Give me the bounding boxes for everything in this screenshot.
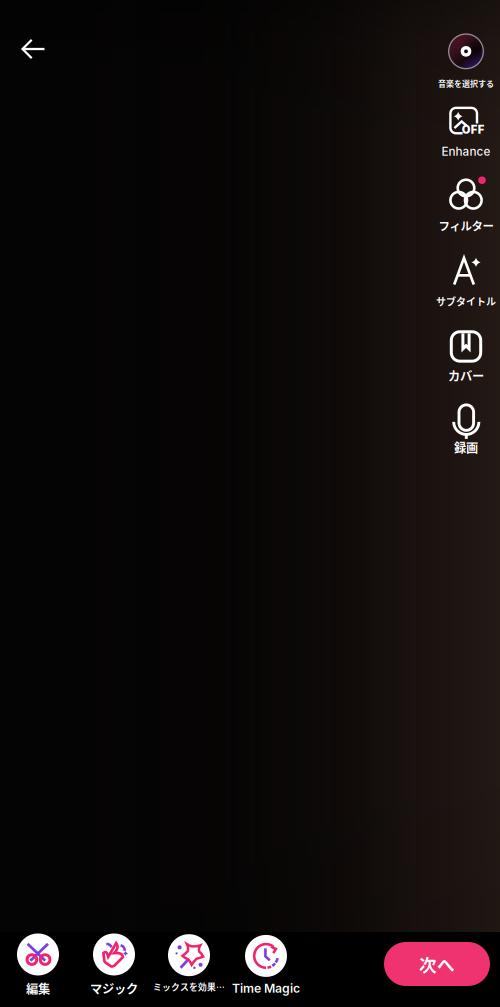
staticText: Time Magic: [232, 981, 300, 996]
button[interactable]: 次へ: [384, 942, 490, 986]
staticText: 音楽を選択する: [438, 77, 494, 89]
staticText: ミックスを効果…: [153, 980, 225, 993]
button[interactable]: Enhance: [438, 104, 493, 161]
button[interactable]: マジック: [88, 931, 140, 999]
staticText: サブタイトル: [436, 294, 496, 308]
staticText: OFF: [462, 123, 485, 136]
staticText: 録画: [454, 438, 478, 456]
button[interactable]: ミックスを効果: [151, 932, 227, 995]
staticText: 編集: [26, 979, 50, 997]
staticText: マジック: [90, 979, 138, 997]
button[interactable]: フィルター: [435, 177, 496, 236]
button[interactable]: 音楽を選択する: [435, 31, 497, 91]
button[interactable]: カバー: [445, 329, 487, 386]
staticText: 次へ: [419, 951, 455, 977]
button[interactable]: 編集: [15, 931, 61, 999]
staticText: Enhance: [441, 144, 490, 159]
button[interactable]: Time Magic: [230, 933, 302, 998]
button[interactable]: サブタイトル: [433, 254, 499, 310]
staticText: フィルター: [438, 217, 493, 234]
button[interactable]: 録画: [447, 401, 485, 458]
button[interactable]: 戻る: [8, 26, 57, 72]
staticText: カバー: [448, 366, 484, 384]
